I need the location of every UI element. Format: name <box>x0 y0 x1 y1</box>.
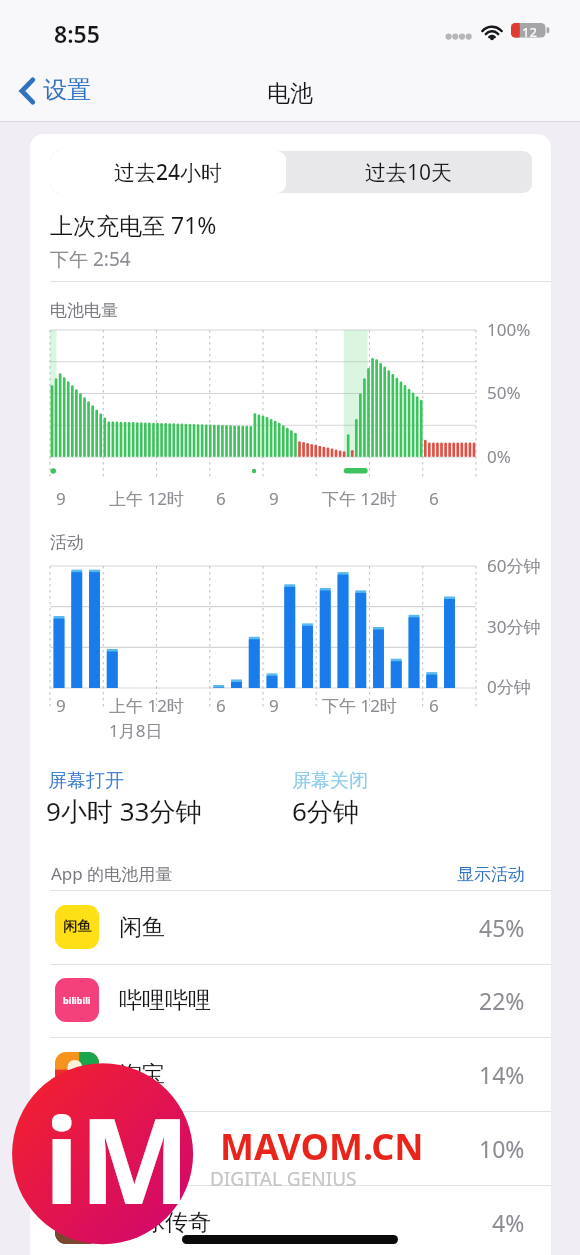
button[interactable]: 淘宝 <box>30 1037 551 1111</box>
staticText: 22% <box>479 985 525 1016</box>
staticText: 电池电量 <box>50 300 118 321</box>
staticText: 闲鱼 <box>119 913 165 942</box>
staticText: 60分钟 <box>487 554 541 577</box>
staticText: 12 <box>522 23 537 39</box>
staticText: 9 <box>56 487 66 510</box>
staticText: 屏幕打开 <box>48 769 124 793</box>
staticText: 下午 12时 <box>322 694 397 717</box>
staticText: 淘宝 <box>119 1060 165 1089</box>
button[interactable]: 过去24小时 <box>50 151 286 193</box>
staticText: 9 <box>269 487 279 510</box>
staticText: 9 <box>269 694 279 717</box>
staticText: 0% <box>487 445 511 468</box>
staticText: bilibili <box>63 994 91 1006</box>
staticText: 1月8日 <box>109 719 163 742</box>
staticText: 9小时 33分钟 <box>46 793 202 829</box>
staticText: 屏幕关闭 <box>292 769 368 793</box>
staticText: iM <box>44 1078 191 1239</box>
staticText: 过去24小时 <box>114 158 223 187</box>
staticText: 50% <box>487 381 521 404</box>
staticText: 上午 12时 <box>109 694 184 717</box>
button[interactable]: Back to Settings <box>13 71 97 111</box>
staticText: DIGITAL GENIUS <box>210 1166 357 1192</box>
staticText: 8:55 <box>54 18 100 49</box>
staticText: 活动 <box>50 532 84 553</box>
staticText: 45% <box>479 912 525 943</box>
staticText: 下午 2:54 <box>50 246 131 272</box>
button[interactable]: 过去10天 <box>286 151 532 193</box>
staticText: 过去10天 <box>365 158 453 187</box>
staticText: 电池 <box>267 79 313 108</box>
button[interactable]: 冰冰传奇 <box>30 1185 551 1255</box>
staticText: 6 <box>429 487 439 510</box>
button[interactable]: 闲鱼 <box>30 890 551 964</box>
staticText: 6 <box>429 694 439 717</box>
staticText: 显示活动 <box>457 864 525 885</box>
staticText: 0分钟 <box>487 675 531 698</box>
button[interactable]: 贴吧 <box>30 1111 551 1185</box>
staticText: 闲鱼 <box>63 918 91 936</box>
staticText: 100% <box>487 318 531 341</box>
staticText: 上次充电至 71% <box>50 209 217 240</box>
staticText: 冰冰传奇 <box>119 1208 211 1237</box>
staticText: 设置 <box>43 75 91 105</box>
staticText: 下午 12时 <box>322 487 397 510</box>
staticText: MAVOM.CN <box>220 1122 424 1171</box>
staticText: 14% <box>479 1059 525 1090</box>
button[interactable]: bilibili <box>30 963 551 1037</box>
staticText: 6 <box>216 694 226 717</box>
staticText: 10% <box>479 1133 525 1164</box>
staticText: 上午 12时 <box>109 487 184 510</box>
staticText: 4% <box>492 1207 525 1238</box>
staticText: 6 <box>216 487 226 510</box>
staticText: 9 <box>56 694 66 717</box>
staticText: App 的电池用量 <box>51 862 173 885</box>
staticText: 哔哩哔哩 <box>119 986 211 1015</box>
staticText: 贴吧 <box>119 1134 165 1163</box>
button[interactable]: 显示活动 <box>453 860 529 889</box>
staticText: 6分钟 <box>292 793 359 829</box>
staticText: 30分钟 <box>487 615 541 638</box>
